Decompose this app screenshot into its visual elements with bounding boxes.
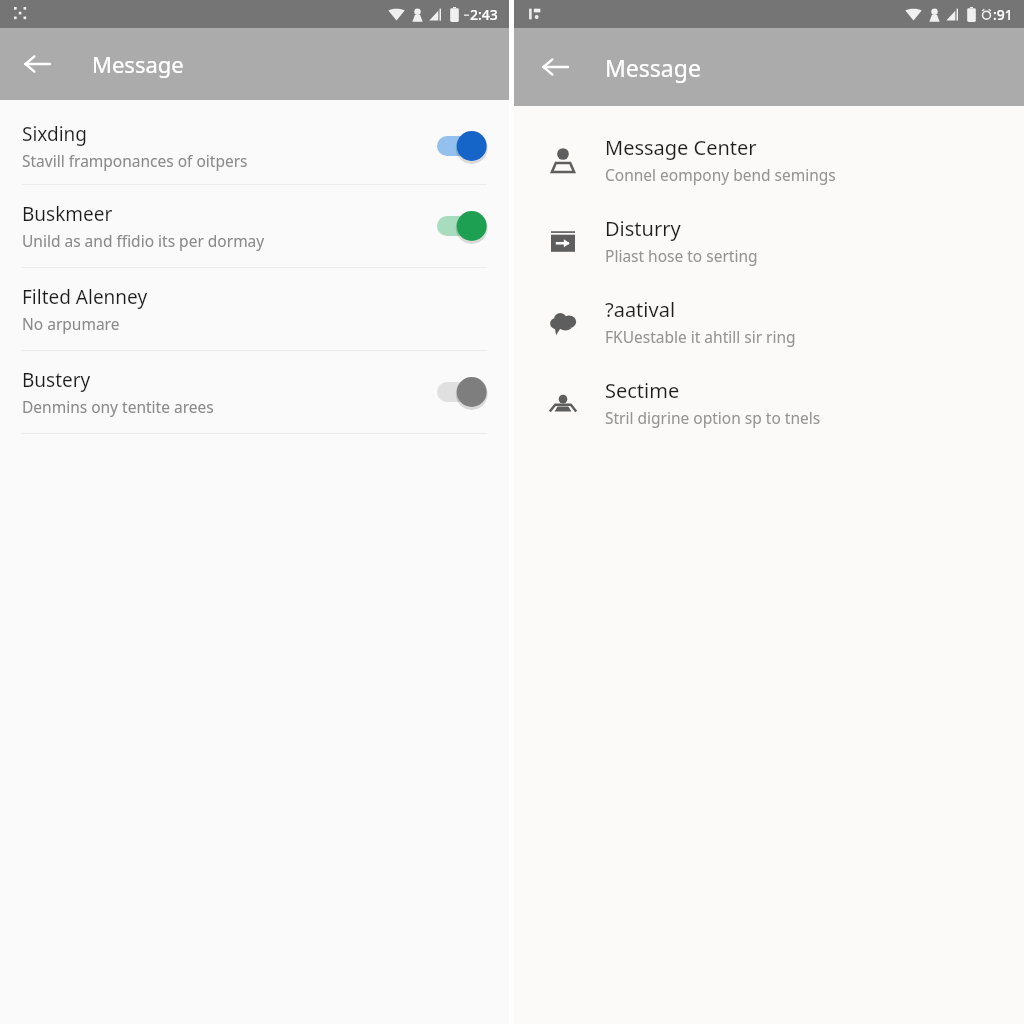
staticText: Disturry xyxy=(605,215,681,242)
staticText: No arpumare xyxy=(22,313,120,334)
button[interactable]: Filted Alenney xyxy=(0,268,509,350)
staticText: Filted Alenney xyxy=(22,284,148,310)
button[interactable]: Disturry xyxy=(514,200,1024,281)
button[interactable]: ?aatival xyxy=(514,281,1024,362)
button[interactable]: Bustery xyxy=(0,351,509,433)
button[interactable]: Back xyxy=(15,42,59,86)
staticText: Sectime xyxy=(605,377,680,404)
button[interactable]: Sixding xyxy=(0,107,509,184)
staticText: 2:43 xyxy=(470,5,498,24)
button[interactable]: Toggle xyxy=(437,129,489,163)
staticText: Stril digrine option sp to tnels xyxy=(605,407,821,428)
staticText: :91 xyxy=(993,5,1013,24)
staticText: Pliast hose to serting xyxy=(605,245,758,266)
staticText: Message xyxy=(605,52,701,83)
staticText: Stavill framponances of oitpers xyxy=(22,150,248,171)
staticText: Message Center xyxy=(605,134,757,161)
staticText: Sixding xyxy=(22,121,88,147)
button[interactable]: Message Center xyxy=(514,119,1024,200)
button[interactable]: Toggle xyxy=(437,209,489,243)
staticText: Message xyxy=(92,49,184,79)
staticText: Buskmeer xyxy=(22,201,113,227)
button[interactable]: Sectime xyxy=(514,362,1024,443)
staticText: Connel eompony bend semings xyxy=(605,164,836,185)
button[interactable]: Buskmeer xyxy=(0,185,509,267)
staticText: ?aatival xyxy=(605,296,676,323)
staticText: Bustery xyxy=(22,367,91,393)
button[interactable]: Toggle xyxy=(437,375,489,409)
staticText: Denmins ony tentite arees xyxy=(22,396,214,417)
staticText: FKUestable it ahtill sir ring xyxy=(605,326,796,347)
staticText: Unild as and ffidio its per dormay xyxy=(22,230,265,251)
button[interactable]: Back xyxy=(533,45,577,89)
